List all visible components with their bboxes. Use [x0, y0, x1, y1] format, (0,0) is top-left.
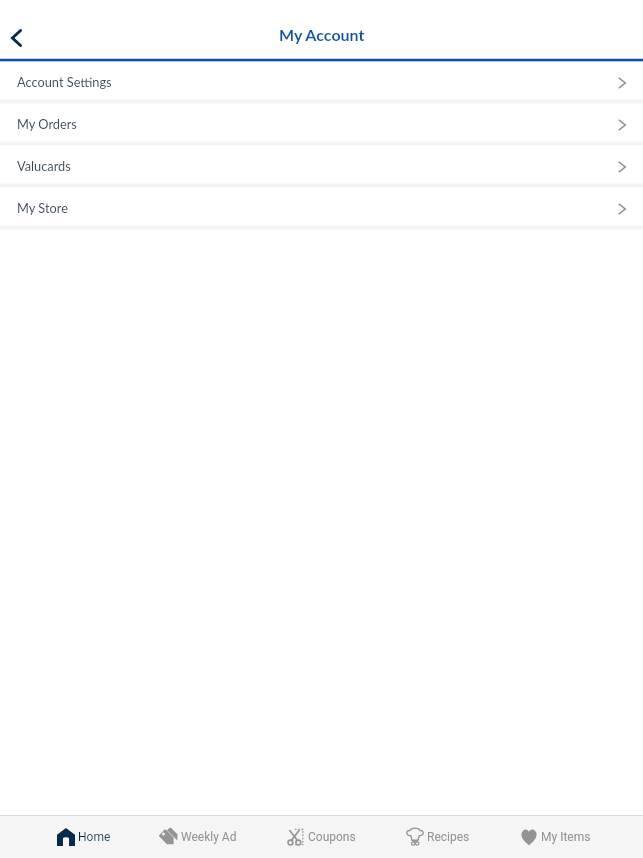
button[interactable]: Valucards — [0, 146, 643, 183]
staticText: Home — [78, 830, 111, 844]
button[interactable]: Account Settings — [0, 62, 643, 99]
button[interactable]: My Store — [0, 188, 643, 225]
staticText: Weekly Ad — [181, 830, 237, 844]
button[interactable]: My Items — [520, 816, 591, 858]
button[interactable]: Back — [0, 0, 44, 58]
staticText: My Items — [541, 830, 591, 844]
button[interactable]: Coupons — [287, 816, 356, 858]
staticText: Recipes — [427, 830, 470, 844]
staticText: Account Settings — [17, 74, 112, 89]
button[interactable]: Recipes — [406, 816, 470, 858]
staticText: My Orders — [17, 116, 77, 131]
staticText: My Account — [279, 25, 365, 44]
button[interactable]: Home — [57, 816, 111, 858]
button[interactable]: Weekly Ad — [160, 816, 237, 858]
button[interactable]: My Orders — [0, 104, 643, 141]
staticText: Valucards — [17, 158, 71, 173]
staticText: Coupons — [308, 830, 356, 844]
staticText: My Store — [17, 200, 68, 215]
